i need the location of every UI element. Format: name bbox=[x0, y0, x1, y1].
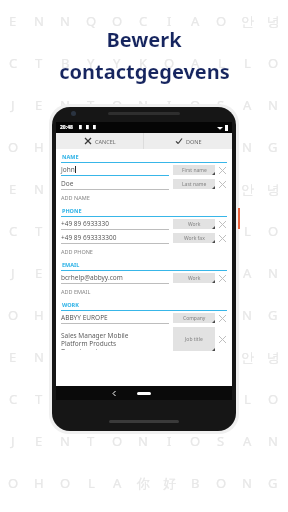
staticText: A bbox=[243, 432, 252, 450]
staticText: Y bbox=[113, 390, 121, 408]
button[interactable]: Company bbox=[173, 313, 215, 323]
staticText: Y bbox=[87, 54, 95, 72]
staticText: Y bbox=[113, 54, 121, 72]
button[interactable]: Job title bbox=[173, 327, 215, 351]
button[interactable]: Remove field bbox=[217, 165, 227, 175]
staticText: contactgegevens bbox=[59, 58, 230, 85]
staticText: O bbox=[112, 96, 123, 114]
staticText: E bbox=[9, 180, 17, 198]
staticText: N bbox=[60, 264, 70, 282]
staticText: S bbox=[217, 264, 225, 282]
staticText: O bbox=[112, 180, 123, 198]
staticText: N bbox=[34, 12, 44, 30]
button[interactable]: Last name bbox=[173, 179, 215, 189]
staticText: A bbox=[243, 264, 252, 282]
staticText: Q bbox=[86, 348, 97, 366]
button[interactable]: +49 89 693333300 bbox=[61, 231, 227, 245]
staticText: I bbox=[167, 432, 172, 450]
staticText: C bbox=[139, 180, 148, 198]
staticText: A bbox=[191, 348, 200, 366]
staticText: O bbox=[164, 390, 175, 408]
button[interactable]: Sales Manager Mobile Platform Products D… bbox=[61, 325, 227, 352]
staticText: Q bbox=[86, 12, 97, 30]
button[interactable]: Remove field bbox=[217, 273, 227, 283]
button[interactable]: bcrhelp@abbyy.com bbox=[61, 271, 227, 285]
button[interactable]: Remove field bbox=[217, 233, 227, 243]
button[interactable]: ADD EMAIL bbox=[61, 285, 227, 297]
staticText: O bbox=[112, 12, 123, 30]
staticText: O bbox=[268, 54, 279, 72]
staticText: A bbox=[243, 96, 252, 114]
staticText: L bbox=[88, 138, 95, 156]
staticText: Y bbox=[87, 390, 95, 408]
staticText: O bbox=[60, 306, 71, 324]
staticText: A bbox=[191, 54, 200, 72]
staticText: Q bbox=[86, 180, 97, 198]
staticText: T bbox=[87, 432, 95, 450]
button[interactable]: Remove field bbox=[217, 219, 227, 229]
staticText: H bbox=[34, 138, 44, 156]
staticText: N bbox=[242, 138, 252, 156]
button[interactable]: Remove field bbox=[217, 179, 227, 189]
staticText: S bbox=[217, 432, 225, 450]
staticText: N bbox=[60, 348, 70, 366]
staticText: L bbox=[244, 390, 251, 408]
staticText: PHONE bbox=[62, 207, 82, 214]
staticText: O bbox=[268, 222, 279, 240]
staticText: bcrhelp@abbyy.com bbox=[61, 273, 123, 282]
staticText: O bbox=[190, 264, 201, 282]
button[interactable]: +49 89 6933330 bbox=[61, 217, 227, 231]
staticText: NAME bbox=[62, 153, 79, 160]
staticText: First name bbox=[182, 167, 207, 174]
staticText: T bbox=[35, 390, 43, 408]
staticText: 안 bbox=[241, 181, 254, 197]
staticText: O bbox=[112, 432, 123, 450]
staticText: G bbox=[268, 138, 278, 156]
staticText: K bbox=[139, 222, 148, 240]
button[interactable]: First name bbox=[173, 165, 215, 175]
staticText: A bbox=[113, 306, 122, 324]
staticText: E bbox=[35, 264, 43, 282]
button[interactable]: Home bbox=[137, 392, 151, 395]
staticText: O bbox=[8, 138, 19, 156]
button[interactable]: Remove field bbox=[217, 334, 227, 344]
staticText: ADD NAME bbox=[61, 194, 90, 201]
staticText: L bbox=[244, 222, 251, 240]
staticText: E bbox=[35, 96, 43, 114]
staticText: N bbox=[242, 474, 252, 492]
staticText: ABBYY EUROPE bbox=[61, 313, 108, 322]
button[interactable]: ADD PHONE bbox=[61, 245, 227, 257]
staticText: 好 bbox=[163, 475, 176, 491]
staticText: B bbox=[61, 390, 70, 408]
button[interactable]: Work bbox=[173, 273, 215, 283]
staticText: O bbox=[190, 96, 201, 114]
staticText: O bbox=[164, 222, 175, 240]
button[interactable]: Work fax bbox=[173, 233, 215, 243]
staticText: 20:48 bbox=[60, 124, 73, 131]
staticText: I bbox=[167, 264, 172, 282]
staticText: 녕 bbox=[267, 181, 280, 197]
button[interactable]: John bbox=[61, 163, 227, 177]
staticText: N bbox=[34, 348, 44, 366]
button[interactable]: CANCEL bbox=[56, 133, 143, 149]
button[interactable]: Back bbox=[108, 387, 120, 399]
staticText: 好 bbox=[163, 307, 176, 323]
staticText: S bbox=[217, 96, 225, 114]
staticText: A bbox=[191, 222, 200, 240]
staticText: L bbox=[218, 54, 225, 72]
staticText: I bbox=[167, 12, 172, 30]
button[interactable]: ABBYY EUROPE bbox=[61, 311, 227, 325]
button[interactable]: Remove field bbox=[217, 313, 227, 323]
staticText: O bbox=[190, 432, 201, 450]
staticText: EMAIL bbox=[62, 261, 80, 268]
staticText: 你 bbox=[137, 307, 150, 323]
button[interactable]: Work bbox=[173, 219, 215, 229]
staticText: N bbox=[60, 432, 70, 450]
staticText: K bbox=[139, 390, 148, 408]
staticText: Work bbox=[188, 221, 201, 228]
button[interactable]: Doe bbox=[61, 177, 227, 191]
button[interactable]: DONE bbox=[144, 133, 232, 149]
button[interactable]: ADD NAME bbox=[61, 191, 227, 203]
staticText: E bbox=[9, 348, 17, 366]
